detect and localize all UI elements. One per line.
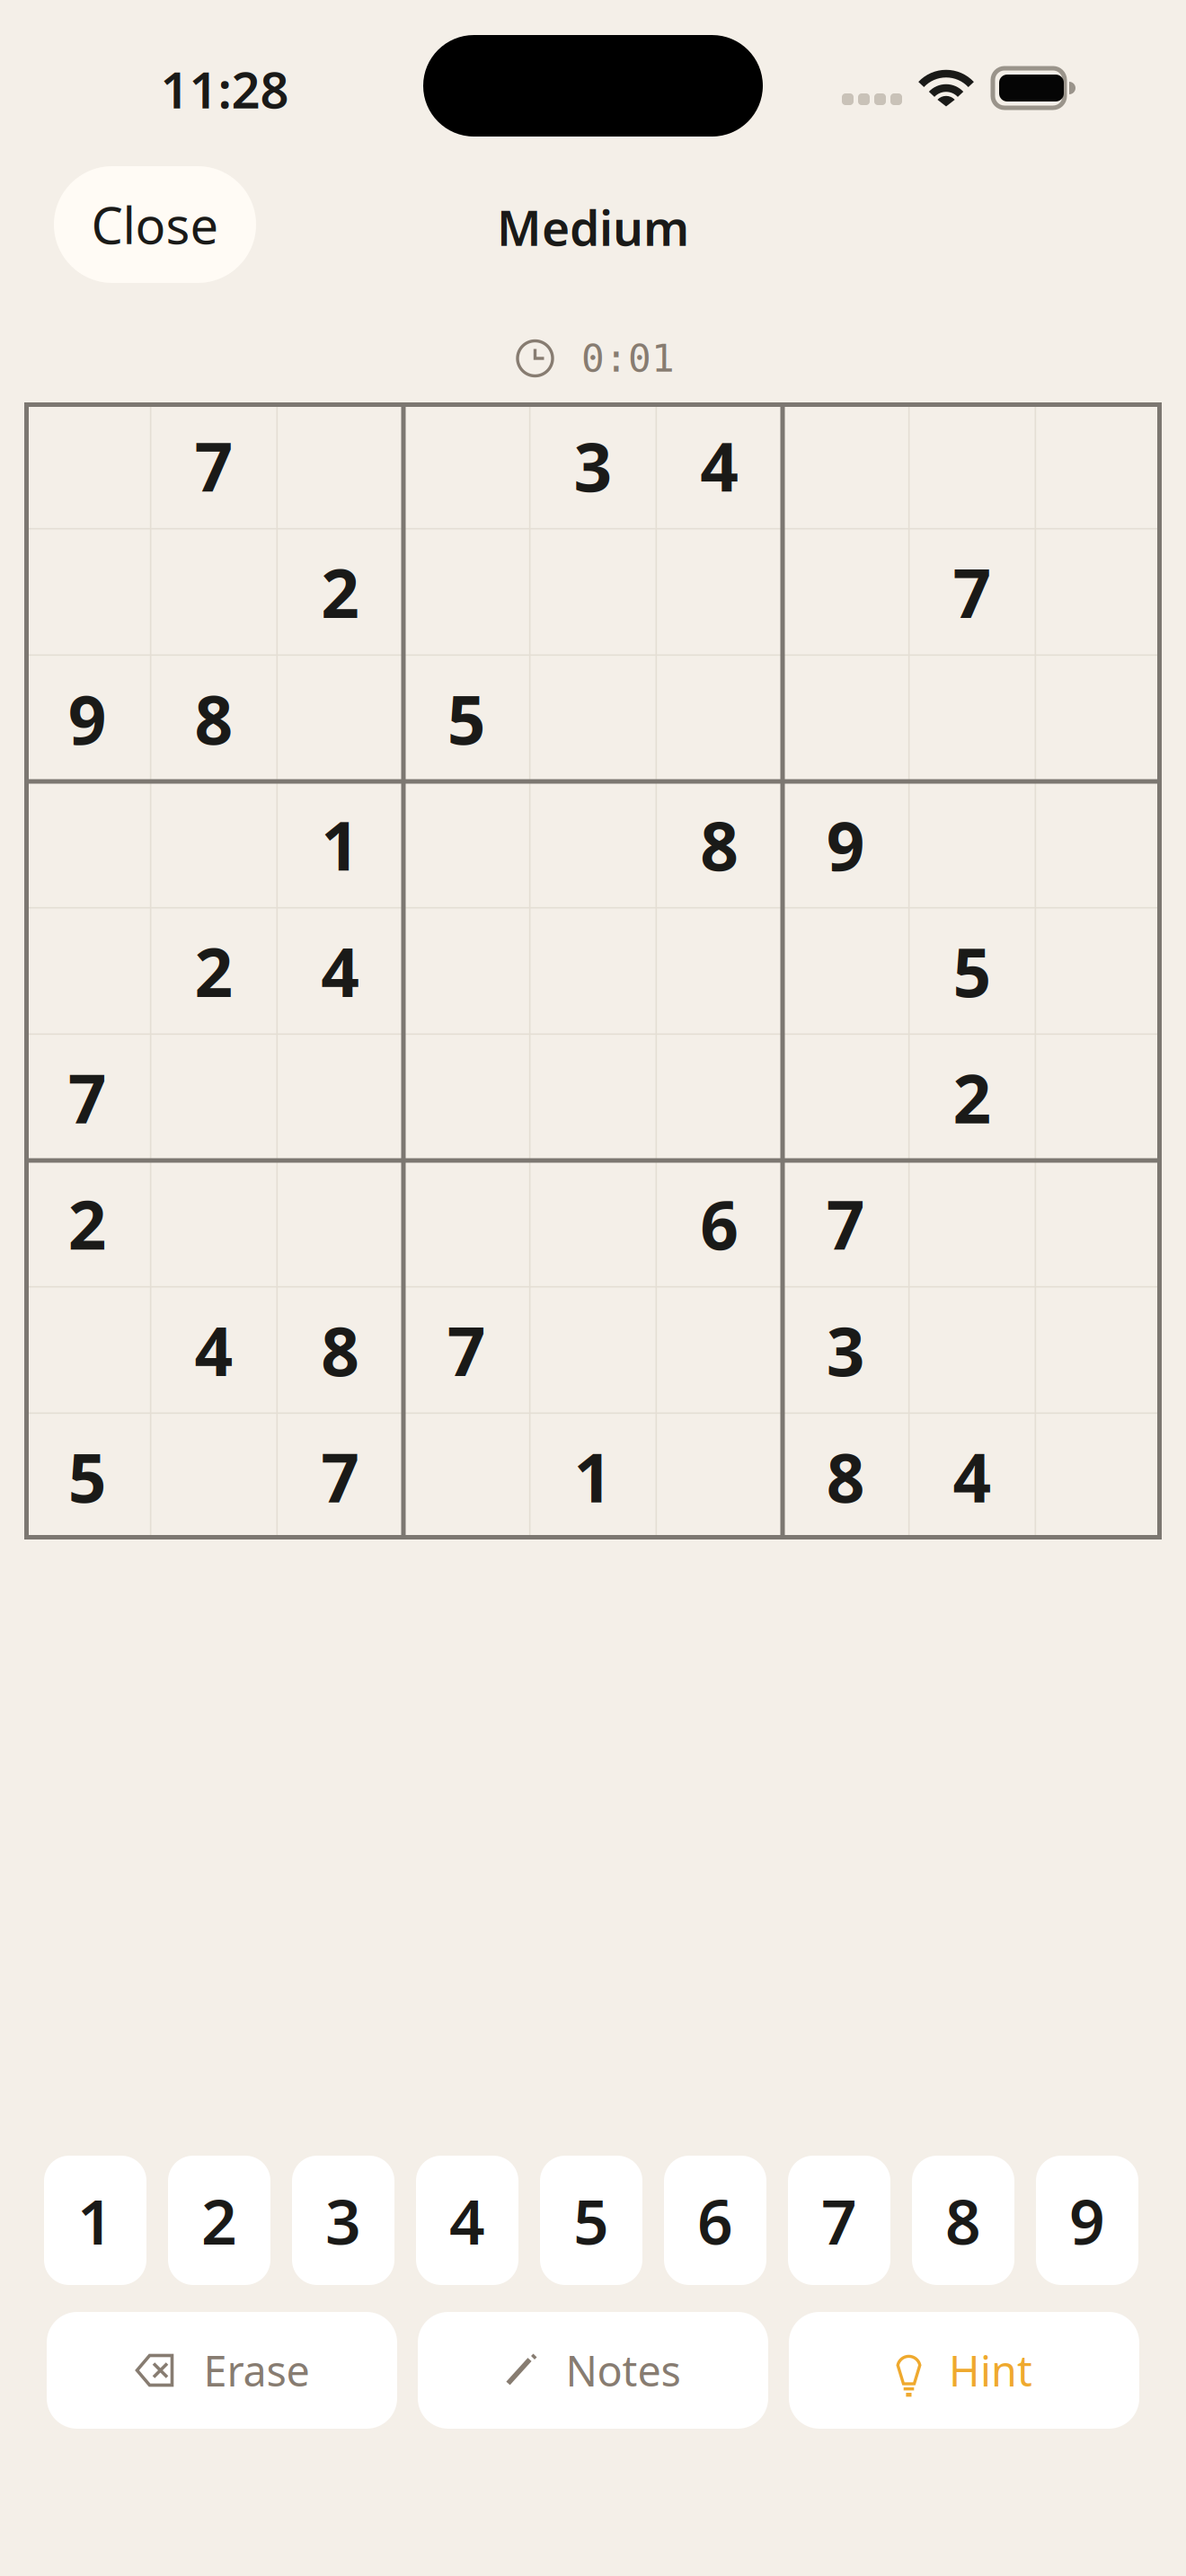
button[interactable]: Empty cell row 2 column 4 [403, 529, 530, 655]
button[interactable]: Empty cell row 3 column 8 [909, 655, 1035, 781]
button[interactable]: 1, row 4 column 3 [277, 781, 403, 908]
button[interactable]: Empty cell row 1 column 4 [403, 402, 530, 529]
button[interactable]: Empty cell row 3 column 7 [783, 655, 909, 781]
button[interactable]: Empty cell row 6 column 2 [151, 1034, 277, 1160]
button[interactable]: Enter 5 [540, 2156, 642, 2285]
button[interactable]: Empty cell row 3 column 9 [1035, 655, 1162, 781]
button[interactable]: 2, row 6 column 8 [909, 1034, 1035, 1160]
button[interactable]: Empty cell row 6 column 5 [530, 1034, 656, 1160]
button[interactable]: 7, row 9 column 3 [277, 1413, 403, 1539]
button[interactable]: 2, row 7 column 1 [24, 1160, 151, 1287]
button[interactable]: Enter 9 [1036, 2156, 1138, 2285]
button[interactable]: Empty cell row 4 column 5 [530, 781, 656, 908]
button[interactable]: 5, row 5 column 8 [909, 908, 1035, 1034]
button[interactable]: Enter 3 [292, 2156, 394, 2285]
button[interactable]: 5, row 3 column 4 [403, 655, 530, 781]
button[interactable]: Empty cell row 5 column 7 [783, 908, 909, 1034]
button[interactable]: Empty cell row 6 column 6 [656, 1034, 783, 1160]
button[interactable]: 1, row 9 column 5 [530, 1413, 656, 1539]
button[interactable]: Empty cell row 7 column 8 [909, 1160, 1035, 1287]
button[interactable]: Empty cell row 2 column 6 [656, 529, 783, 655]
button[interactable]: Empty cell row 7 column 4 [403, 1160, 530, 1287]
button[interactable]: Enter 6 [664, 2156, 766, 2285]
button[interactable]: Enter 8 [912, 2156, 1014, 2285]
staticText: 8 [195, 674, 233, 763]
button[interactable]: 3, row 8 column 7 [783, 1287, 909, 1413]
button[interactable]: Notes [418, 2312, 768, 2429]
button[interactable]: 7, row 7 column 7 [783, 1160, 909, 1287]
button[interactable]: 7, row 2 column 8 [909, 529, 1035, 655]
button[interactable]: Empty cell row 4 column 8 [909, 781, 1035, 908]
button[interactable]: 8, row 3 column 2 [151, 655, 277, 781]
button[interactable]: Empty cell row 5 column 9 [1035, 908, 1162, 1034]
button[interactable]: Empty cell row 7 column 2 [151, 1160, 277, 1287]
button[interactable]: Empty cell row 8 column 9 [1035, 1287, 1162, 1413]
button[interactable]: 4, row 5 column 3 [277, 908, 403, 1034]
button[interactable]: Empty cell row 4 column 9 [1035, 781, 1162, 908]
button[interactable]: Empty cell row 1 column 3 [277, 402, 403, 529]
button[interactable]: 2, row 2 column 3 [277, 529, 403, 655]
staticText: 3 [325, 2179, 361, 2262]
button[interactable]: 2, row 5 column 2 [151, 908, 277, 1034]
button[interactable]: Empty cell row 7 column 9 [1035, 1160, 1162, 1287]
button[interactable]: 8, row 9 column 7 [783, 1413, 909, 1539]
button[interactable]: Empty cell row 6 column 4 [403, 1034, 530, 1160]
button[interactable]: Empty cell row 9 column 6 [656, 1413, 783, 1539]
button[interactable]: Hint [789, 2312, 1139, 2429]
button[interactable]: Empty cell row 1 column 9 [1035, 402, 1162, 529]
button[interactable]: Empty cell row 4 column 1 [24, 781, 151, 908]
button[interactable]: 9, row 3 column 1 [24, 655, 151, 781]
button[interactable]: 4, row 8 column 2 [151, 1287, 277, 1413]
button[interactable]: Empty cell row 1 column 1 [24, 402, 151, 529]
button[interactable]: 7, row 6 column 1 [24, 1034, 151, 1160]
button[interactable]: Close [54, 166, 256, 283]
button[interactable]: Empty cell row 5 column 1 [24, 908, 151, 1034]
button[interactable]: Enter 2 [168, 2156, 270, 2285]
button[interactable]: Empty cell row 7 column 5 [530, 1160, 656, 1287]
button[interactable]: 5, row 9 column 1 [24, 1413, 151, 1539]
button[interactable]: Empty cell row 9 column 2 [151, 1413, 277, 1539]
button[interactable]: Empty cell row 2 column 7 [783, 529, 909, 655]
button[interactable]: Empty cell row 5 column 6 [656, 908, 783, 1034]
button[interactable]: Empty cell row 1 column 8 [909, 402, 1035, 529]
button[interactable]: Empty cell row 8 column 1 [24, 1287, 151, 1413]
button[interactable]: Enter 7 [788, 2156, 890, 2285]
button[interactable]: Empty cell row 4 column 2 [151, 781, 277, 908]
button[interactable]: Empty cell row 5 column 4 [403, 908, 530, 1034]
button[interactable]: Empty cell row 4 column 4 [403, 781, 530, 908]
button[interactable]: 4, row 9 column 8 [909, 1413, 1035, 1539]
button[interactable]: Empty cell row 3 column 6 [656, 655, 783, 781]
button[interactable]: Empty cell row 9 column 4 [403, 1413, 530, 1539]
button[interactable]: Enter 1 [44, 2156, 146, 2285]
button[interactable]: Empty cell row 2 column 9 [1035, 529, 1162, 655]
staticText: 2 [953, 1053, 991, 1142]
button[interactable]: Empty cell row 9 column 9 [1035, 1413, 1162, 1539]
button[interactable]: Empty cell row 2 column 1 [24, 529, 151, 655]
button[interactable]: 4, row 1 column 6 [656, 402, 783, 529]
button[interactable]: Empty cell row 3 column 5 [530, 655, 656, 781]
button[interactable]: 7, row 8 column 4 [403, 1287, 530, 1413]
button[interactable]: Empty cell row 7 column 3 [277, 1160, 403, 1287]
button[interactable]: 7, row 1 column 2 [151, 402, 277, 529]
button[interactable]: 8, row 8 column 3 [277, 1287, 403, 1413]
button[interactable]: 9, row 4 column 7 [783, 781, 909, 908]
button[interactable]: Empty cell row 3 column 3 [277, 655, 403, 781]
button[interactable]: Enter 4 [416, 2156, 518, 2285]
button[interactable]: Empty cell row 8 column 6 [656, 1287, 783, 1413]
button[interactable]: Empty cell row 6 column 3 [277, 1034, 403, 1160]
button[interactable]: 3, row 1 column 5 [530, 402, 656, 529]
button[interactable]: Empty cell row 6 column 9 [1035, 1034, 1162, 1160]
button[interactable]: 6, row 7 column 6 [656, 1160, 783, 1287]
button[interactable]: Empty cell row 6 column 7 [783, 1034, 909, 1160]
button[interactable]: Erase [47, 2312, 397, 2429]
button[interactable]: 8, row 4 column 6 [656, 781, 783, 908]
button[interactable]: Empty cell row 1 column 7 [783, 402, 909, 529]
